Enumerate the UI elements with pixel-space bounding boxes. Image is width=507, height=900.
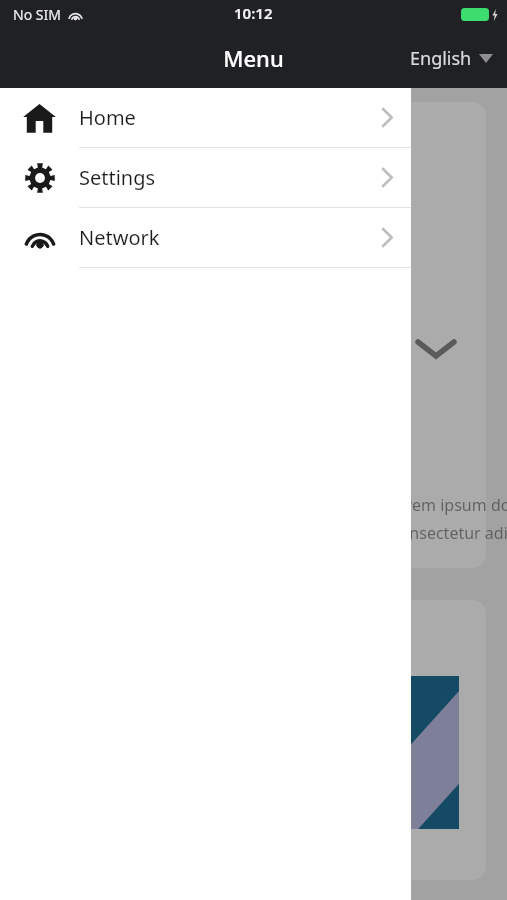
button[interactable]: Settings — [0, 148, 411, 207]
staticText: Menu — [223, 43, 284, 73]
staticText: Settings — [79, 164, 156, 191]
staticText: English — [410, 46, 472, 71]
button[interactable]: English — [408, 42, 495, 75]
staticText: lorem ipsum dolor sit aman — [392, 494, 507, 516]
staticText: consectetur adipiscing elite — [392, 522, 507, 544]
staticText: No SIM — [13, 5, 61, 24]
staticText: Home — [79, 104, 136, 131]
staticText: Network — [79, 224, 160, 251]
button[interactable]: Network — [0, 208, 411, 267]
staticText: 10:12 — [234, 3, 273, 23]
button[interactable]: Home — [0, 88, 411, 147]
